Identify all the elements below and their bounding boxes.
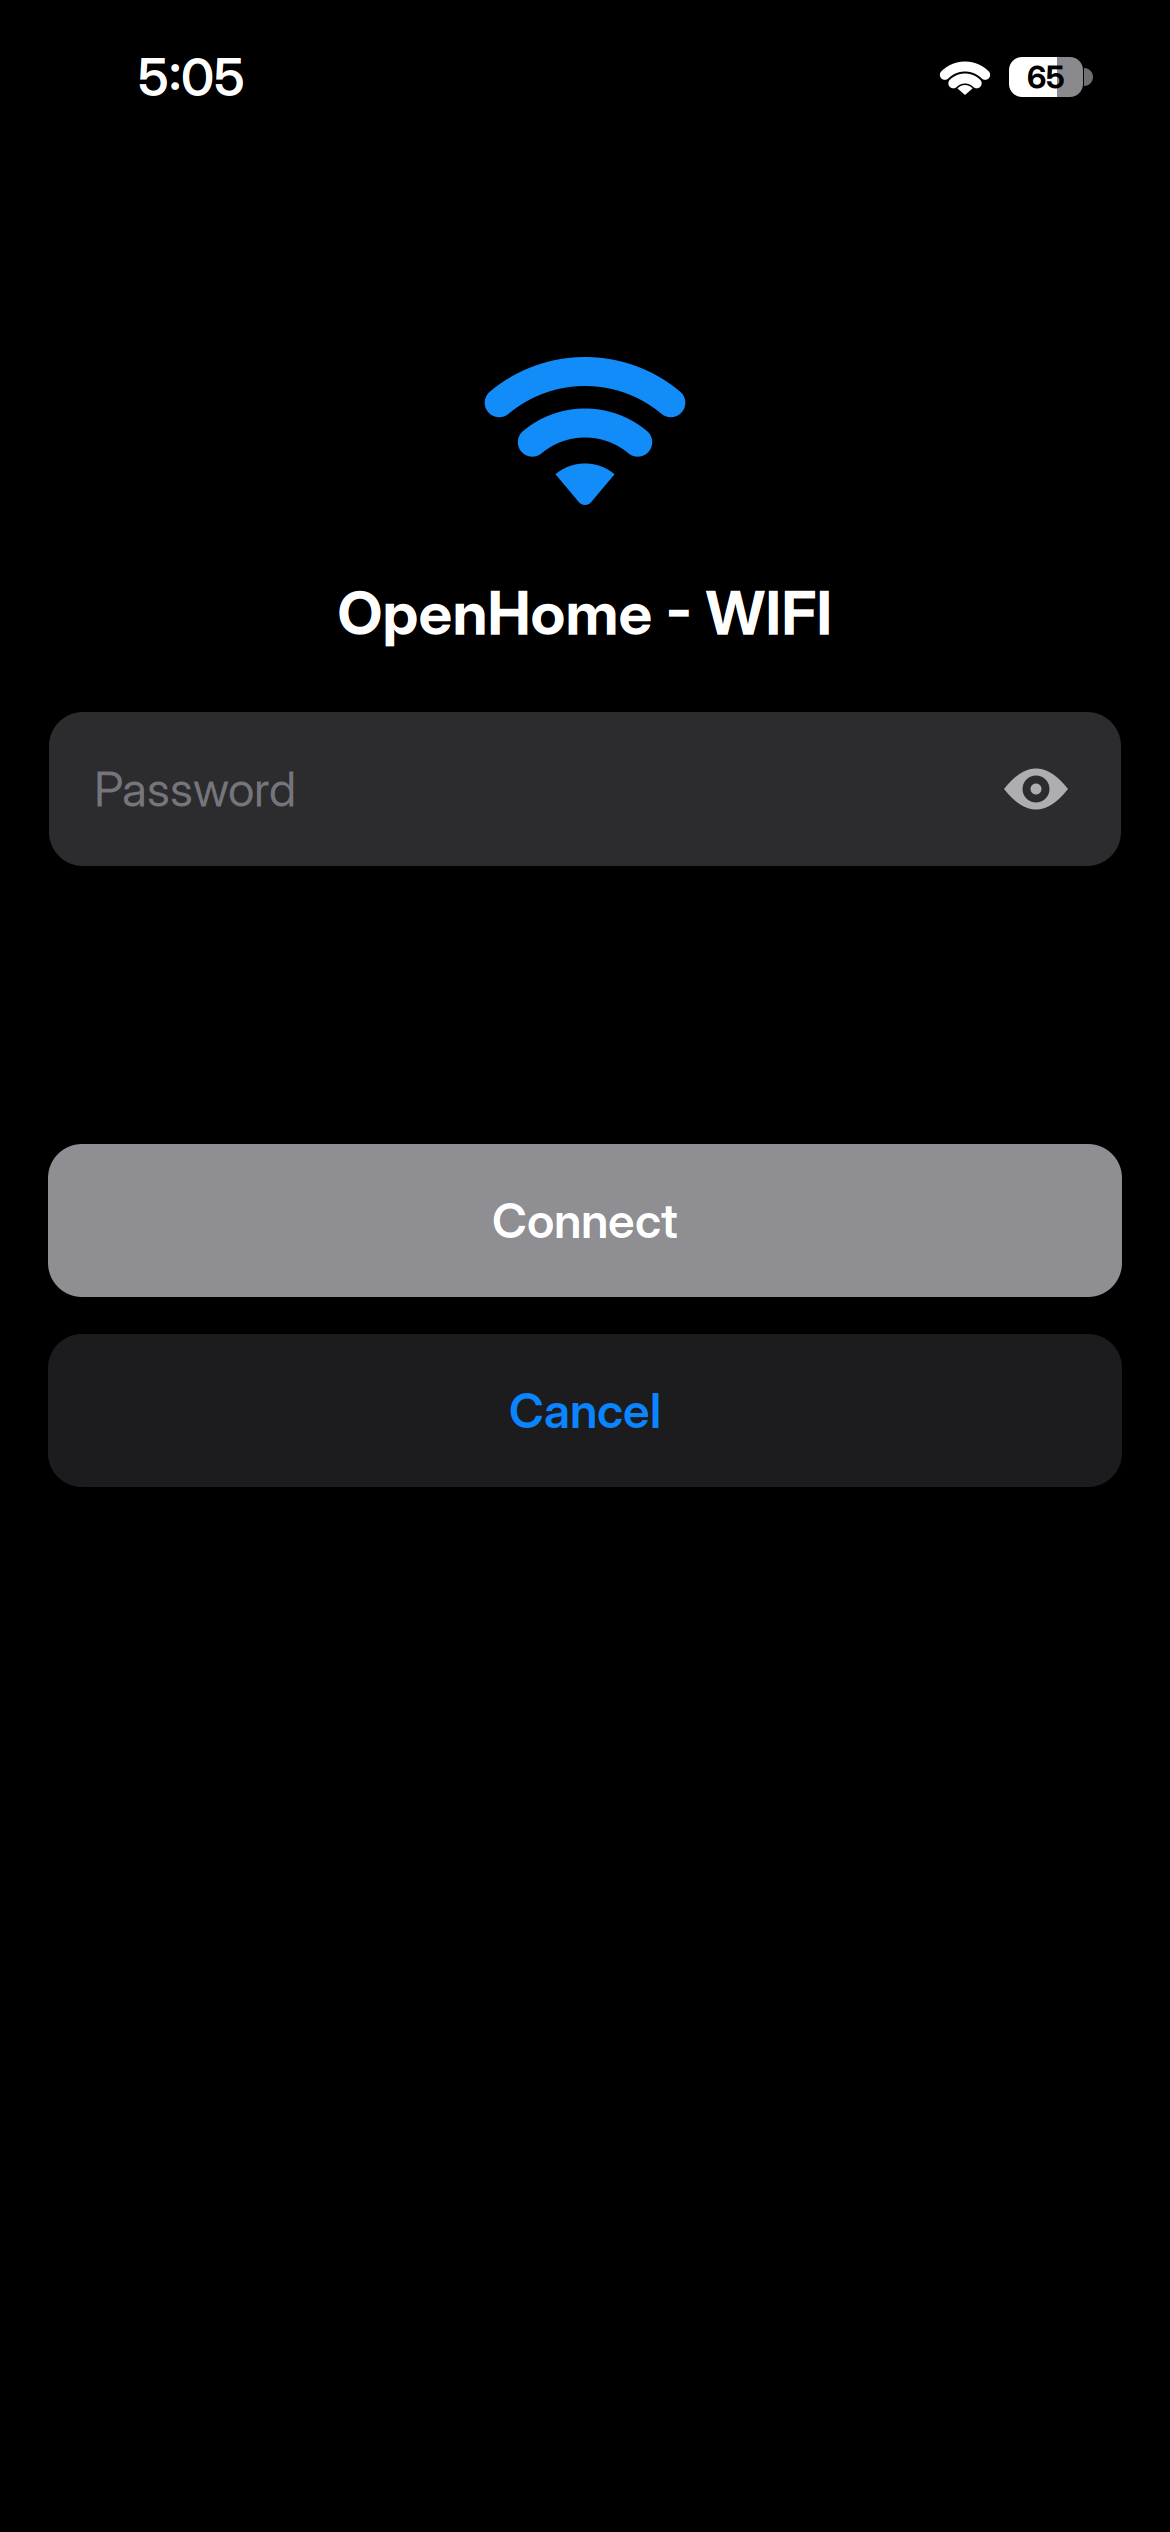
button[interactable]: Password (49, 712, 1121, 866)
staticText: 5:05 (138, 45, 245, 108)
staticText: Connect (492, 1191, 678, 1250)
button[interactable]: Connect (48, 1144, 1122, 1297)
button[interactable]: Cancel (48, 1334, 1122, 1487)
staticText: 65 (1027, 58, 1065, 96)
staticText: Password (94, 760, 296, 818)
staticText: OpenHome - WIFI (337, 577, 832, 649)
button[interactable] (1004, 768, 1068, 810)
staticText: Cancel (509, 1381, 661, 1440)
